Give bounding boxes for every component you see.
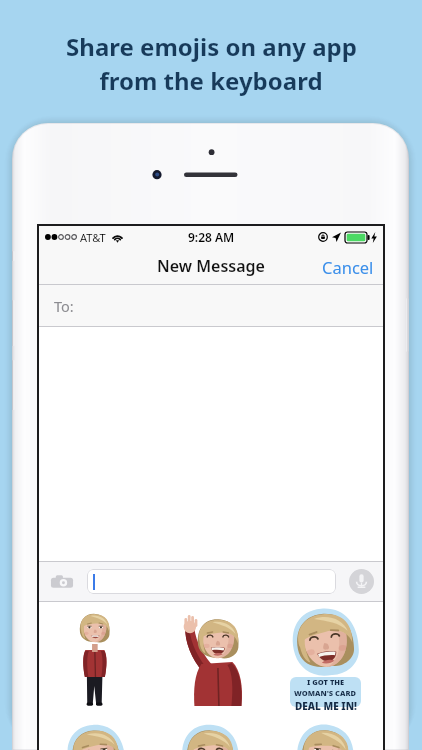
staticText: DEAL ME IN! — [295, 699, 357, 713]
staticText: New Message — [157, 255, 265, 277]
button[interactable] — [87, 569, 336, 594]
staticText: Share emojis on any app — [66, 30, 357, 63]
staticText: To: — [54, 296, 74, 316]
staticText: AT&T — [80, 230, 106, 245]
button[interactable]: Sticker — [39, 602, 153, 718]
button[interactable]: Sticker — [153, 602, 268, 718]
button[interactable]: Sticker — [268, 602, 383, 718]
staticText: I GOT THE — [307, 677, 345, 687]
button[interactable]: Sticker — [268, 718, 383, 750]
staticText: WOMAN'S CARD — [294, 688, 357, 698]
staticText: 9:28 AM — [188, 229, 235, 245]
button[interactable]: Cancel — [313, 250, 383, 284]
staticText: Cancel — [322, 256, 374, 278]
button[interactable]: Record audio — [349, 569, 374, 594]
staticText: from the keyboard — [99, 64, 323, 97]
button[interactable]: Sticker — [39, 718, 153, 750]
button[interactable]: Take photo — [50, 573, 74, 591]
button[interactable]: Sticker — [153, 718, 268, 750]
